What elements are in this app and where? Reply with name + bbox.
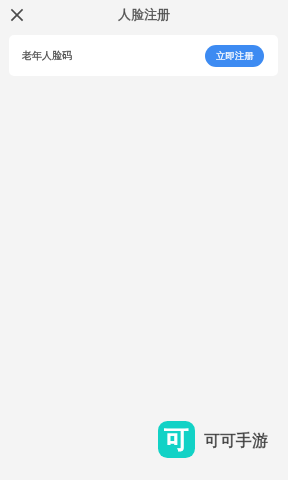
staticText: 人脸注册 [118,6,170,22]
button[interactable]: 老年人脸码 [9,35,278,76]
staticText: 人脸注册 [118,6,170,22]
staticText: 可可手游 [204,431,268,451]
staticText: 立即注册 [216,50,254,62]
staticText: 老年人脸码 [22,49,72,62]
button[interactable]: 立即注册 [205,45,264,67]
button[interactable]: Close [5,2,29,26]
staticText: 可 [164,424,189,455]
staticText: 可可手游 [204,431,268,451]
staticText: 可 [164,424,189,455]
staticText: 老年人脸码 [22,49,72,62]
